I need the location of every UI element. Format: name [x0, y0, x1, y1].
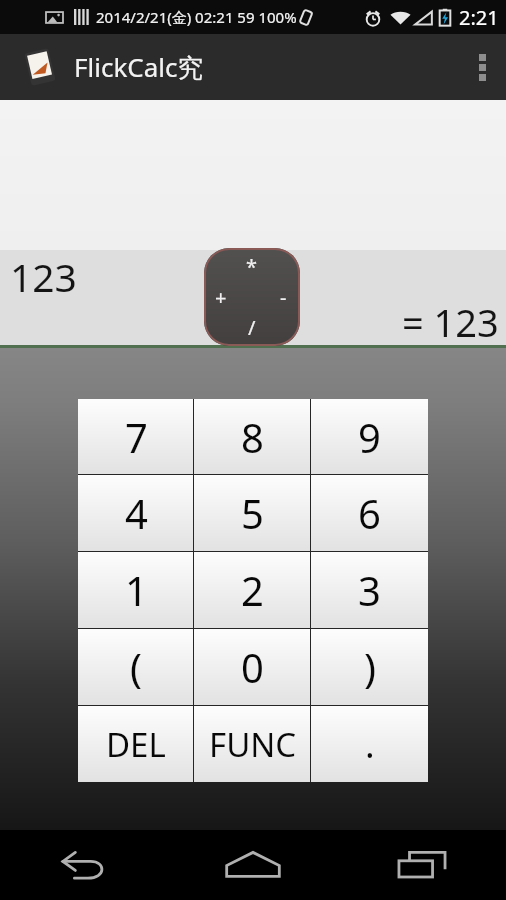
staticText: 3: [358, 563, 381, 617]
staticText: 2:21: [459, 4, 499, 31]
staticText: ): [364, 640, 376, 694]
staticText: /: [248, 314, 256, 341]
button[interactable]: Recent apps: [337, 830, 506, 900]
staticText: 2014/2/21(金) 02:21 59 100%: [96, 7, 297, 27]
button[interactable]: 1: [78, 552, 194, 628]
staticText: 7: [125, 410, 148, 464]
staticText: 8: [241, 410, 264, 464]
button[interactable]: 8: [194, 399, 311, 474]
button[interactable]: FUNC: [194, 706, 311, 782]
staticText: -: [280, 284, 287, 311]
button[interactable]: ): [311, 629, 428, 705]
button[interactable]: 9: [311, 399, 428, 474]
button[interactable]: Operator flick pad: [204, 248, 300, 346]
staticText: 2: [241, 563, 264, 617]
staticText: 1: [125, 563, 148, 617]
staticText: 4: [125, 486, 148, 540]
button[interactable]: 3: [311, 552, 428, 628]
staticText: 0: [241, 640, 264, 694]
button[interactable]: More options: [458, 34, 506, 100]
staticText: DEL: [106, 722, 166, 767]
button[interactable]: 7: [78, 399, 194, 474]
staticText: +: [215, 284, 227, 311]
staticText: 5: [241, 486, 264, 540]
staticText: FUNC: [209, 722, 297, 767]
button[interactable]: 5: [194, 475, 311, 551]
staticText: *: [246, 253, 258, 280]
button[interactable]: 2: [194, 552, 311, 628]
staticText: = 123: [402, 296, 499, 348]
staticText: FlickCalc究: [74, 49, 204, 85]
button[interactable]: 4: [78, 475, 194, 551]
staticText: 9: [358, 410, 381, 464]
staticText: 6: [358, 486, 381, 540]
button[interactable]: 6: [311, 475, 428, 551]
button[interactable]: Home: [168, 830, 337, 900]
button[interactable]: DEL: [78, 706, 194, 782]
button[interactable]: .: [311, 706, 428, 782]
button[interactable]: Back: [0, 830, 168, 900]
button[interactable]: (: [78, 629, 194, 705]
staticText: .: [365, 720, 375, 769]
button[interactable]: 0: [194, 629, 311, 705]
staticText: 123: [10, 250, 77, 303]
staticText: (: [130, 640, 142, 694]
